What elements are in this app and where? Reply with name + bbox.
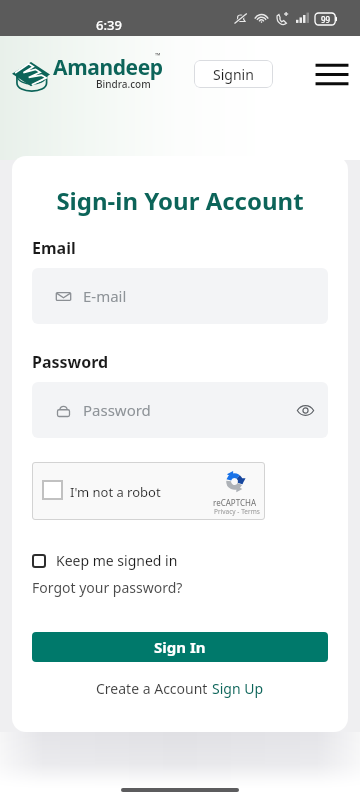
- button[interactable]: I'm not a robot: [42, 480, 63, 500]
- button[interactable]: Forgot your password?: [32, 578, 183, 597]
- staticText: Signin: [213, 65, 254, 84]
- button[interactable]: Sign Up: [212, 679, 264, 698]
- button[interactable]: Signin: [194, 60, 273, 88]
- staticText: Sign-in Your Account: [32, 184, 328, 217]
- staticText: 99: [321, 14, 331, 25]
- staticText: Keep me signed in: [56, 551, 178, 570]
- staticText: 6:39: [96, 16, 122, 34]
- button[interactable]: Password: [32, 382, 328, 438]
- staticText: reCAPTCHA: [213, 497, 257, 508]
- staticText: Create a Account: [96, 679, 212, 698]
- staticText: Password: [83, 400, 151, 420]
- button[interactable]: Menu: [317, 56, 357, 92]
- staticText: Sign In: [154, 637, 206, 657]
- button[interactable]: E-mail: [32, 268, 328, 324]
- button[interactable]: Sign In: [32, 632, 328, 662]
- staticText: Password: [32, 351, 109, 373]
- button[interactable]: Keep me signed in: [32, 551, 178, 570]
- staticText: Email: [32, 237, 76, 259]
- other: Show password: [297, 402, 314, 419]
- staticText: Amandeep: [53, 53, 163, 82]
- staticText: ™: [155, 51, 161, 61]
- staticText: Privacy - Terms: [214, 507, 260, 516]
- staticText: E-mail: [83, 286, 127, 306]
- staticText: Bindra.com: [96, 77, 151, 91]
- staticText: I'm not a robot: [70, 483, 161, 501]
